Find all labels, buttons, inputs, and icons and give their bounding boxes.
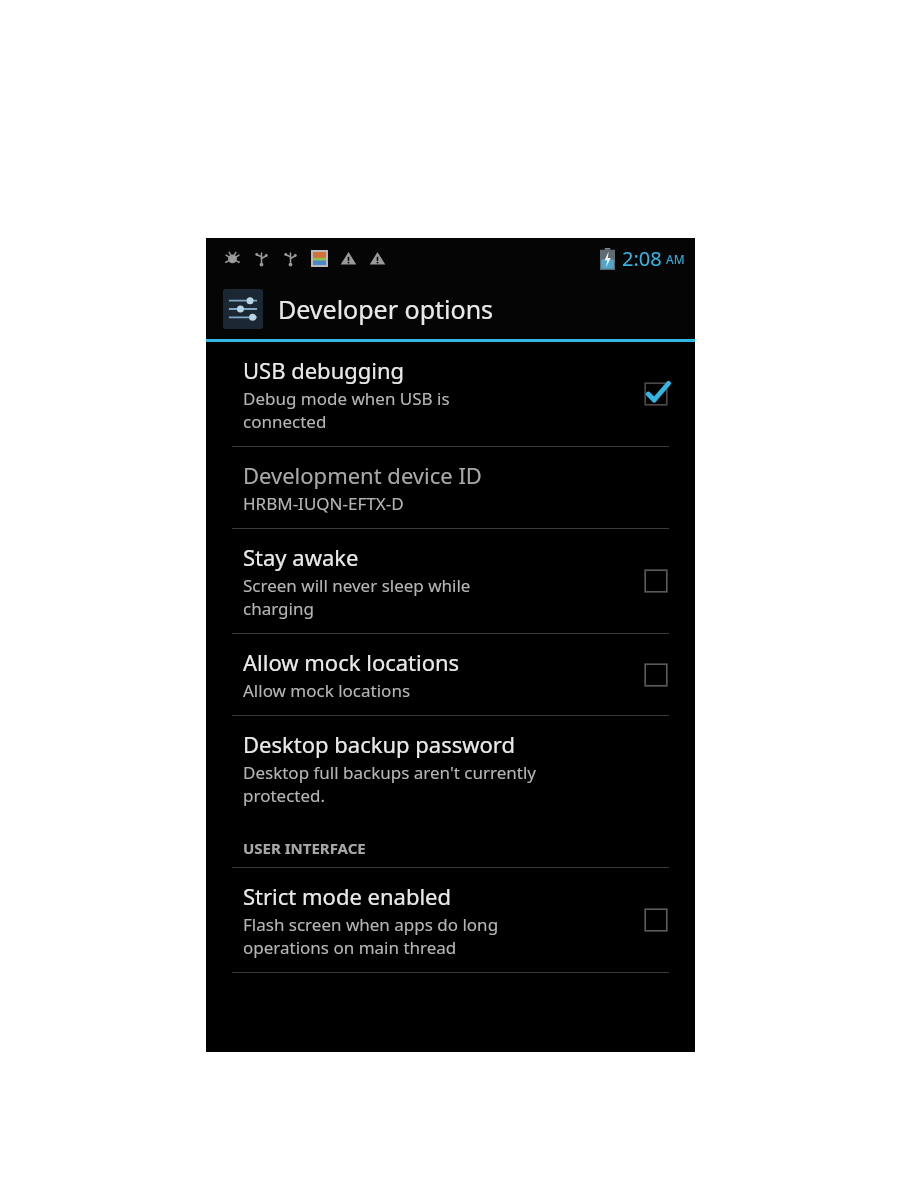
staticText: USER INTERFACE (243, 838, 366, 858)
button[interactable]: Unchecked (639, 903, 673, 937)
staticText: Stay awake (243, 542, 359, 572)
button[interactable]: Development device ID (206, 447, 695, 528)
staticText: Screen will never sleep while charging (243, 574, 471, 620)
staticText: Debug mode when USB is connected (243, 387, 450, 433)
staticText: Development device ID (243, 460, 482, 490)
button[interactable]: Strict mode enabled (206, 868, 695, 972)
staticText: USB debugging (243, 355, 405, 385)
button[interactable]: Desktop backup password (206, 716, 695, 820)
staticText: Developer options (278, 292, 494, 326)
button[interactable]: Stay awake (206, 529, 695, 633)
staticText: Allow mock locations (243, 647, 460, 677)
staticText: Desktop backup password (243, 729, 516, 759)
staticText: AM (666, 251, 685, 267)
staticText: Strict mode enabled (243, 881, 452, 911)
button[interactable]: Allow mock locations (206, 634, 695, 715)
staticText: Desktop full backups aren't currently pr… (243, 761, 536, 807)
button[interactable]: Unchecked (639, 564, 673, 598)
staticText: Flash screen when apps do long operation… (243, 913, 499, 959)
staticText: HRBM-IUQN-EFTX-D (243, 492, 404, 515)
button[interactable]: USB debugging (206, 342, 695, 446)
button[interactable]: Unchecked (639, 658, 673, 692)
staticText: Allow mock locations (243, 679, 411, 702)
other: Settings icon (223, 289, 263, 329)
button[interactable]: Checked (639, 377, 673, 411)
staticText: 2:08 (622, 245, 662, 272)
